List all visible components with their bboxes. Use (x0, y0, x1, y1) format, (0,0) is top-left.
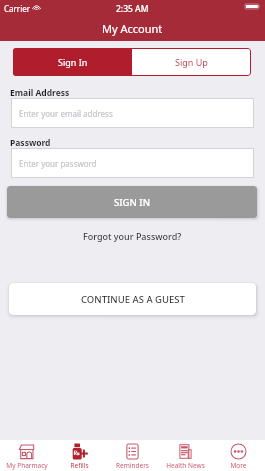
staticText: My Account (102, 21, 163, 36)
button[interactable]: Sign Up (132, 48, 251, 76)
staticText: Email Address (10, 87, 70, 98)
staticText: Forgot your Password? (83, 230, 182, 242)
button[interactable]: Health News (159, 440, 212, 471)
button[interactable]: More (212, 440, 265, 471)
staticText: Enter your email address (19, 108, 113, 119)
button[interactable]: CONTINUE AS A GUEST (9, 283, 256, 315)
staticText: Enter your password (19, 158, 97, 169)
button[interactable]: My Pharmacy (0, 440, 53, 471)
staticText: More (230, 461, 247, 470)
staticText: 2:35 AM (116, 3, 149, 15)
button[interactable]: Refills (53, 440, 106, 471)
staticText: Health News (166, 461, 205, 470)
button[interactable]: Reminders (106, 440, 159, 471)
staticText: Sign In (58, 56, 88, 68)
staticText: Password (10, 137, 51, 148)
staticText: My Pharmacy (6, 461, 48, 470)
staticText: Sign Up (175, 56, 208, 68)
button[interactable]: SIGN IN (7, 186, 257, 218)
staticText: Refills (70, 461, 89, 470)
staticText: SIGN IN (114, 196, 151, 209)
staticText: CONTINUE AS A GUEST (81, 293, 185, 306)
staticText: Carrier (4, 3, 31, 14)
button[interactable]: Forgot your Password? (0, 229, 265, 242)
button[interactable]: Sign In (13, 48, 132, 76)
staticText: Reminders (116, 461, 149, 470)
